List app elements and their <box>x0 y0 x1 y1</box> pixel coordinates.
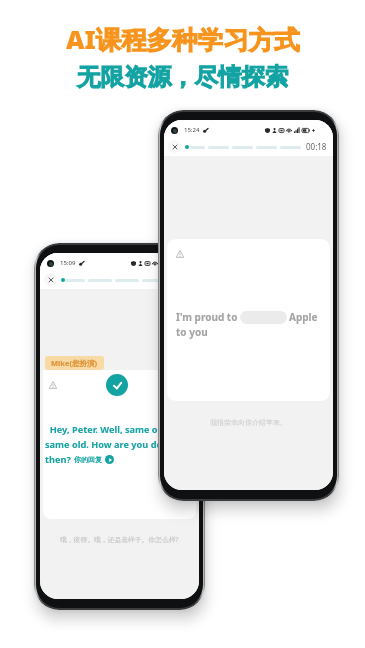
staticText: 哦，彼得。哦，还是老样子。你怎么样? <box>60 535 179 544</box>
staticText: 你的回复 <box>74 455 102 464</box>
button[interactable]: Correct <box>106 374 128 396</box>
staticText: then? <box>45 453 74 466</box>
staticText: Apple <box>289 310 318 324</box>
staticText: 15:24 <box>184 126 200 134</box>
button[interactable]: Close <box>44 273 57 286</box>
staticText: 我很荣幸向你介绍苹果。 <box>210 418 287 427</box>
staticText: to you <box>176 325 208 339</box>
staticText: AI课程多种学习方式 <box>66 22 300 57</box>
staticText: Hey, Peter. Well, same old, <box>45 423 169 436</box>
staticText: I'm proud to <box>176 310 238 324</box>
staticText: 00:18 <box>306 141 327 152</box>
staticText: 无限资源，尽情探索 <box>77 62 289 92</box>
staticText: Mike(您扮演) <box>51 358 98 368</box>
staticText: same old. How are you doing <box>45 438 177 451</box>
staticText: 15:09 <box>60 259 76 267</box>
button[interactable]: Play reply <box>105 455 114 464</box>
button[interactable]: Close <box>168 140 181 153</box>
